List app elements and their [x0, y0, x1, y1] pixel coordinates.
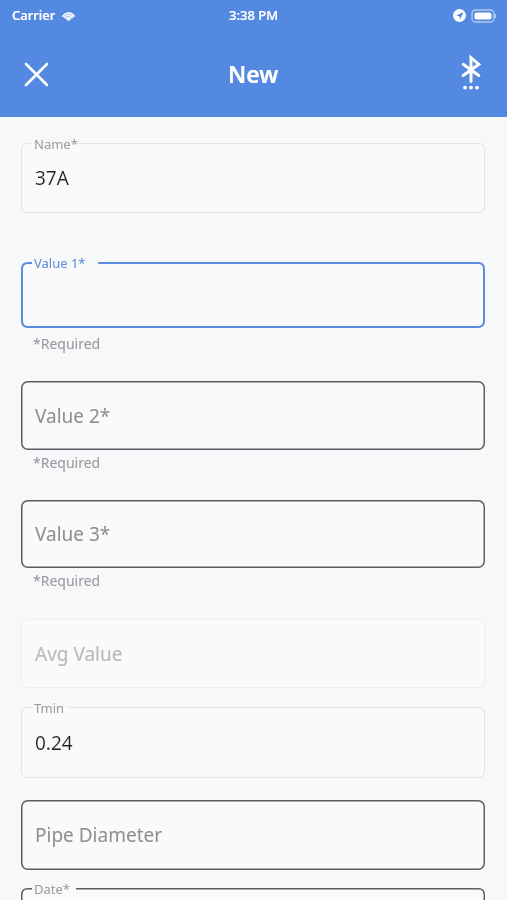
staticText: *Required — [33, 571, 101, 590]
staticText: Value 3* — [35, 521, 111, 547]
button[interactable]: Name* — [21, 143, 485, 213]
staticText: Pipe Diameter — [35, 822, 163, 848]
staticText: Carrier — [12, 6, 56, 24]
button[interactable]: Value 2* — [21, 381, 485, 450]
button[interactable]: Close — [12, 50, 60, 98]
button[interactable]: Value 1* — [21, 262, 485, 328]
staticText: *Required — [33, 453, 101, 472]
button[interactable]: Value 3* — [21, 500, 485, 568]
staticText: Date* — [34, 880, 70, 898]
button[interactable]: Avg Value — [21, 619, 485, 688]
staticText: *Required — [33, 334, 101, 353]
staticText: 37A — [35, 165, 69, 191]
staticText: Value 1* — [34, 254, 86, 272]
staticText: Avg Value — [35, 641, 123, 667]
staticText: 0.24 — [35, 730, 73, 756]
staticText: Value 2* — [35, 403, 111, 429]
staticText: Tmin — [34, 699, 65, 717]
staticText: 3:38 PM — [229, 6, 279, 24]
button[interactable]: Pipe Diameter — [21, 800, 485, 870]
button[interactable]: Date* — [21, 888, 485, 900]
button[interactable]: Tmin — [21, 707, 485, 778]
button[interactable]: Bluetooth scanning — [447, 50, 495, 98]
staticText: New — [228, 58, 279, 89]
staticText: Name* — [34, 135, 78, 153]
